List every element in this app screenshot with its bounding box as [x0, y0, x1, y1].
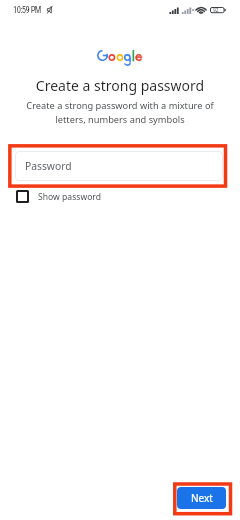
button[interactable]: Next [177, 487, 226, 509]
staticText: 10:59 PM [13, 5, 41, 15]
staticText: Create a strong password [0, 76, 240, 95]
button[interactable]: Show password [16, 190, 114, 203]
staticText: 92 [213, 7, 219, 14]
staticText: Show password [38, 191, 102, 203]
button[interactable]: Password [15, 151, 223, 181]
staticText: Next [191, 491, 213, 505]
other: Silent mode [47, 6, 53, 14]
staticText: Password [25, 159, 72, 173]
staticText: Create a strong password with a mixture … [20, 99, 220, 126]
